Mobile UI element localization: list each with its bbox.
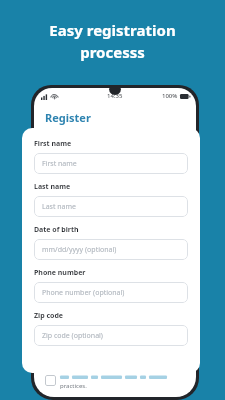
staticText: mm/dd/yyyy (optional): [42, 245, 117, 255]
staticText: First name: [34, 139, 72, 149]
staticText: Easy registration: [49, 20, 176, 40]
staticText: Date of birth: [34, 225, 79, 235]
staticText: practices.: [60, 382, 87, 390]
staticText: Register: [45, 110, 91, 125]
staticText: Last name: [34, 182, 71, 192]
button[interactable]: First name: [34, 153, 188, 174]
button[interactable]: mm/dd/yyyy (optional): [34, 239, 188, 260]
staticText: Zip code (optional): [42, 331, 103, 341]
button[interactable]: Phone number (optional): [34, 282, 188, 303]
staticText: Zip code: [34, 311, 63, 321]
staticText: First name: [42, 159, 77, 169]
staticText: 100%: [162, 92, 178, 100]
staticText: processs: [80, 42, 145, 62]
button[interactable]: practices.: [45, 374, 170, 390]
staticText: Phone number (optional): [42, 288, 125, 298]
staticText: Last name: [42, 202, 77, 212]
button[interactable]: Last name: [34, 196, 188, 217]
button[interactable]: Zip code (optional): [34, 325, 188, 346]
staticText: Phone number: [34, 268, 86, 278]
staticText: 14:35: [107, 92, 123, 100]
